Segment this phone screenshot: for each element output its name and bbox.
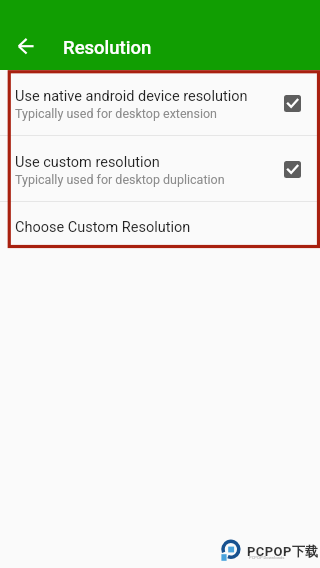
staticText: PCPOP下载 xyxy=(247,543,319,559)
button[interactable]: Checked xyxy=(284,161,301,178)
staticText: Use custom resolution xyxy=(15,154,160,171)
staticText: Typically used for desktop extension xyxy=(15,106,218,121)
staticText: PCPOP Downloads xyxy=(249,555,285,560)
staticText: Typically used for desktop duplication xyxy=(15,172,225,187)
staticText: Choose Custom Resolution xyxy=(15,219,191,236)
staticText: Resolution xyxy=(63,37,152,59)
button[interactable]: Use custom resolution xyxy=(0,136,320,201)
button[interactable]: Navigate up xyxy=(14,34,38,58)
button[interactable]: Checked xyxy=(284,95,301,112)
staticText: Use native android device resolution xyxy=(15,88,248,105)
button[interactable]: Choose Custom Resolution xyxy=(0,202,320,247)
button[interactable]: Use native android device resolution xyxy=(0,70,320,135)
